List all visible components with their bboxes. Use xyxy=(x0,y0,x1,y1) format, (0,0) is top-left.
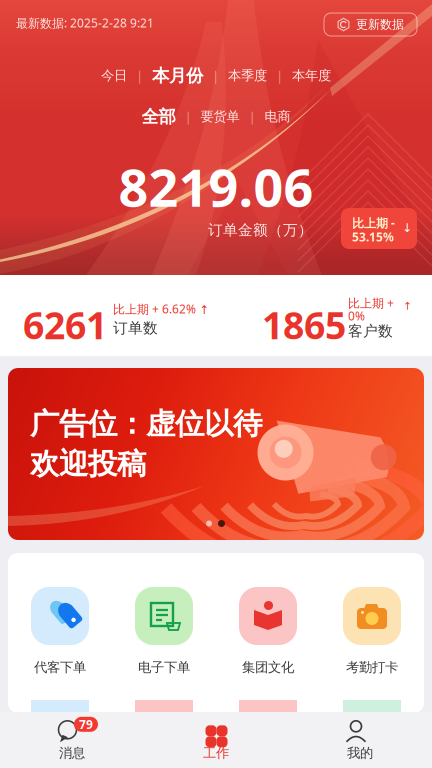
button[interactable]: 本月份 xyxy=(152,65,203,86)
button[interactable]: 我的 xyxy=(288,719,432,761)
staticText: 本季度 xyxy=(228,67,267,84)
button[interactable]: 电商 xyxy=(264,108,290,125)
staticText: 全部 xyxy=(141,106,175,127)
button[interactable]: 集团文化 xyxy=(216,587,320,675)
staticText: 电商 xyxy=(264,108,290,125)
staticText: 本月份 xyxy=(152,65,203,86)
staticText: 比上期 + xyxy=(348,295,394,311)
staticText: 6261 xyxy=(23,300,107,350)
staticText: 0% xyxy=(348,308,365,324)
staticText: ↓ xyxy=(402,221,412,235)
button[interactable]: 79 xyxy=(0,719,144,761)
staticText: 本年度 xyxy=(292,67,331,84)
staticText: 我的 xyxy=(347,745,373,761)
staticText: | xyxy=(136,67,143,84)
staticText: | xyxy=(248,108,255,125)
button[interactable]: 工作 xyxy=(144,719,288,761)
button[interactable]: 全部 xyxy=(141,106,175,127)
staticText: | xyxy=(276,67,283,84)
button[interactable]: 要货单 xyxy=(200,108,239,125)
staticText: | xyxy=(212,67,219,84)
staticText: 集团文化 xyxy=(242,659,294,675)
staticText: 电子下单 xyxy=(138,659,190,675)
staticText: | xyxy=(184,108,191,125)
staticText: 客户数 xyxy=(348,322,393,340)
staticText: 更新数据 xyxy=(356,17,404,32)
staticText: 消息 xyxy=(59,745,85,761)
button[interactable]: 本年度 xyxy=(292,67,331,84)
staticText: 今日 xyxy=(101,67,127,84)
staticText: 广告位：虚位以待 xyxy=(30,406,262,442)
staticText: 工作 xyxy=(203,745,229,761)
staticText: 要货单 xyxy=(200,108,239,125)
button[interactable]: 代客下单 xyxy=(8,587,112,675)
button[interactable]: 今日 xyxy=(101,67,127,84)
staticText: 53.15% xyxy=(352,229,394,245)
staticText: 最新数据: 2025-2-28 9:21 xyxy=(16,15,154,31)
staticText: 考勤打卡 xyxy=(346,659,398,675)
button[interactable]: 广告位：虚位以待 xyxy=(0,356,432,540)
staticText: 79 xyxy=(79,716,93,732)
staticText: 代客下单 xyxy=(34,659,86,675)
button[interactable]: 电子下单 xyxy=(112,587,216,675)
staticText: 8219.06 xyxy=(118,152,313,221)
button[interactable]: 更新数据 xyxy=(324,13,417,36)
button[interactable]: 本季度 xyxy=(228,67,267,84)
staticText: 订单金额（万） xyxy=(208,221,313,239)
staticText: 欢迎投稿 xyxy=(30,446,146,482)
staticText: 1865 xyxy=(262,300,346,350)
staticText: ↑ xyxy=(403,300,412,312)
button[interactable]: 考勤打卡 xyxy=(320,587,424,675)
staticText: 订单数 xyxy=(113,319,158,337)
staticText: 比上期 + 6.62% ↑ xyxy=(113,301,209,317)
staticText: 比上期 - xyxy=(352,215,395,231)
